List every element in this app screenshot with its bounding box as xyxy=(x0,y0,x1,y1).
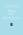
staticText: Cupertino xyxy=(4,4,19,8)
staticText: 72° xyxy=(7,8,15,16)
staticText: Mostly Sunny xyxy=(3,16,20,20)
